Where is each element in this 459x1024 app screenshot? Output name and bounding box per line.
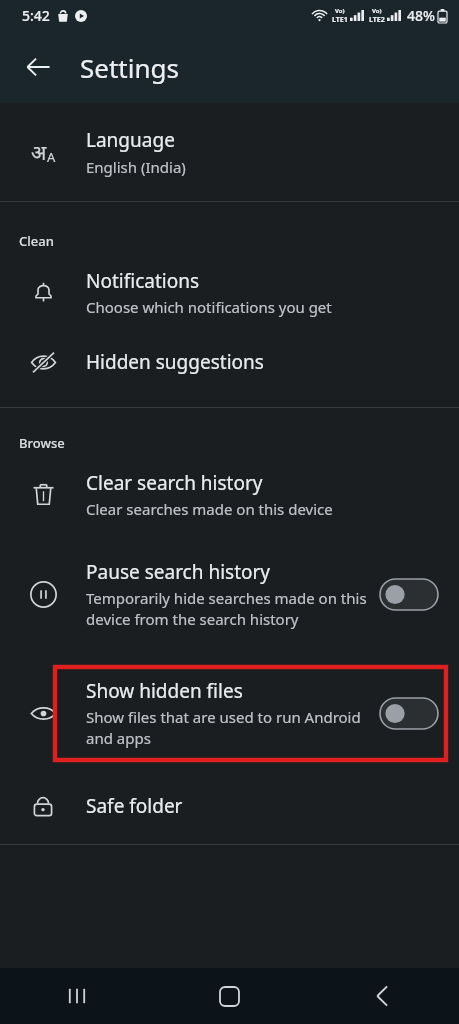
staticText: Choose which notifications you get	[86, 297, 332, 317]
staticText: Notifications	[86, 268, 200, 294]
staticText: अ	[31, 139, 47, 166]
staticText: Clean	[19, 232, 54, 250]
button[interactable]: Notifications	[0, 250, 459, 334]
staticText: LTE1	[332, 15, 348, 25]
button[interactable]: Show hidden files	[0, 652, 459, 774]
button[interactable]: Safe folder	[0, 774, 459, 838]
button[interactable]: Pause search history	[0, 536, 459, 652]
staticText: 5:42	[22, 6, 50, 25]
button[interactable]: Home	[153, 968, 306, 1024]
staticText: Clear searches made on this device	[86, 499, 333, 519]
staticText: Browse	[19, 434, 65, 452]
staticText: Show hidden files	[86, 678, 243, 704]
staticText: Temporarily hide searches made on this d…	[86, 588, 370, 630]
staticText: LTE2	[369, 15, 385, 25]
button[interactable]: अ	[0, 103, 459, 201]
staticText: 48%	[407, 6, 435, 25]
staticText: Vo)	[335, 7, 345, 15]
staticText: Settings	[80, 50, 179, 85]
button[interactable]: Back	[306, 968, 459, 1024]
staticText: Clear search history	[86, 470, 263, 496]
button[interactable]: Clear search history	[0, 452, 459, 536]
button[interactable]: Back	[16, 45, 60, 89]
staticText: Hidden suggestions	[86, 349, 264, 375]
staticText: A	[47, 148, 56, 166]
staticText: Pause search history	[86, 559, 271, 585]
staticText: English (India)	[86, 157, 186, 177]
button[interactable]: Recent apps	[0, 968, 153, 1024]
button[interactable]: Hidden suggestions	[0, 334, 459, 390]
staticText: Vo)	[372, 7, 382, 15]
staticText: Safe folder	[86, 793, 183, 819]
staticText: Show files that are used to run Android …	[86, 707, 370, 749]
staticText: Language	[86, 127, 175, 153]
